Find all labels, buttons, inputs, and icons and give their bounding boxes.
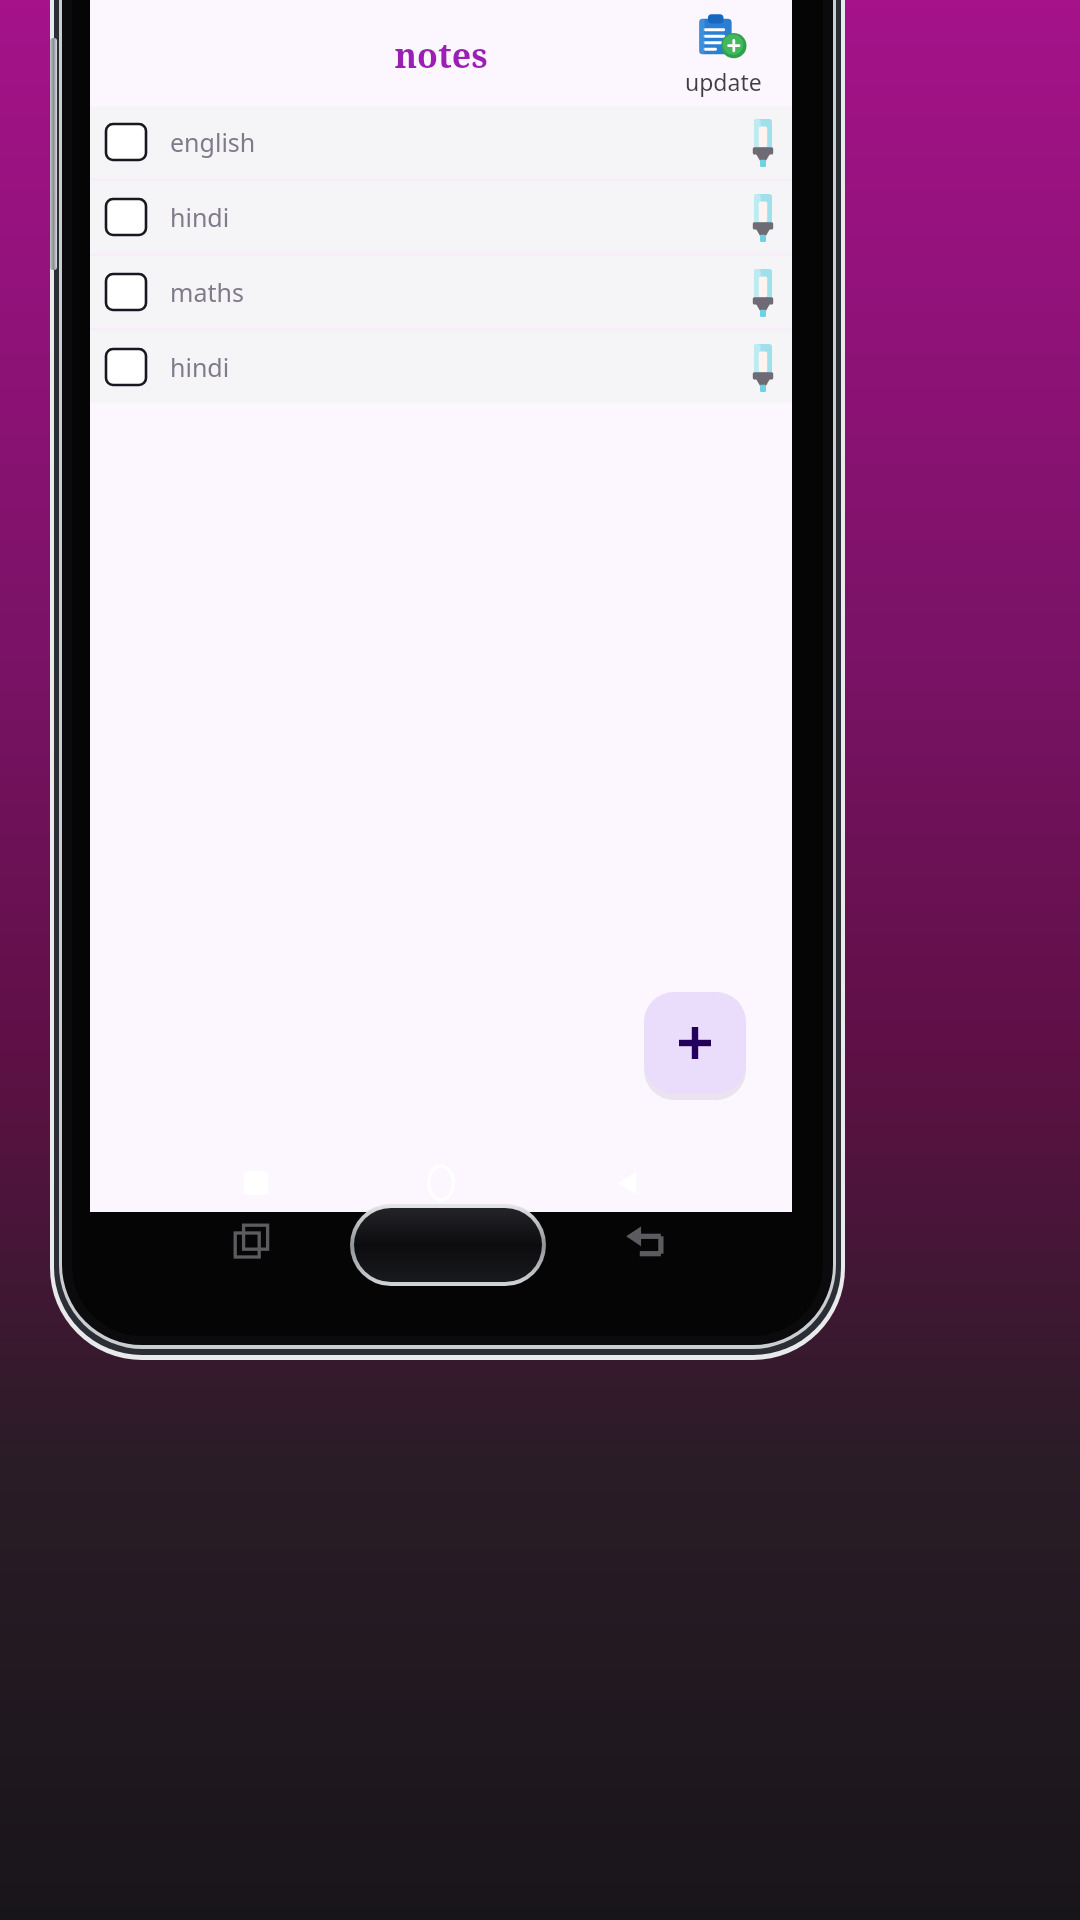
button[interactable]: Select hindi: [90, 181, 792, 253]
staticText: hindi: [170, 200, 230, 234]
button[interactable]: Back: [610, 1166, 644, 1200]
button[interactable]: Edit hindi: [748, 341, 778, 393]
button[interactable]: Select hindi: [106, 199, 146, 235]
button[interactable]: update: [668, 10, 778, 97]
staticText: english: [170, 125, 256, 159]
button[interactable]: Add note: [644, 992, 746, 1094]
button[interactable]: Select maths: [106, 274, 146, 310]
button[interactable]: Select maths: [90, 256, 792, 328]
button[interactable]: Edit hindi: [748, 191, 778, 243]
button[interactable]: Edit maths: [748, 266, 778, 318]
staticText: maths: [170, 275, 244, 309]
staticText: notes: [394, 32, 488, 78]
button[interactable]: Select hindi: [106, 349, 146, 385]
button[interactable]: Select hindi: [90, 331, 792, 403]
button[interactable]: Recents: [239, 1166, 273, 1200]
button[interactable]: Home: [350, 1204, 546, 1286]
button[interactable]: Back: [615, 1214, 677, 1276]
button[interactable]: Recent apps: [228, 1215, 288, 1275]
button[interactable]: Select english: [90, 106, 792, 178]
staticText: hindi: [170, 350, 230, 384]
button[interactable]: Select english: [106, 124, 146, 160]
staticText: update: [685, 66, 762, 97]
button[interactable]: Edit english: [748, 116, 778, 168]
button[interactable]: Home: [421, 1163, 461, 1203]
